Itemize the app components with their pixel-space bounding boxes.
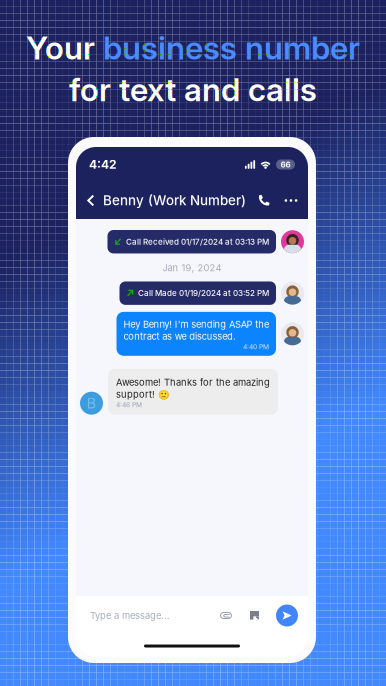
button[interactable]: Send [276,604,298,626]
staticText: 4:42 [89,157,117,172]
staticText: Awesome! Thanks for the amazing [116,377,270,388]
button[interactable]: Call [254,185,274,215]
staticText: 4:40 PM [243,343,269,351]
staticText: for text and calls [69,71,317,109]
staticText: Call Made 01/19/2024 at 03:52 PM [138,288,269,298]
staticText: Benny (Work Number) [103,193,246,208]
button[interactable]: More options [281,185,301,215]
button[interactable]: Templates [248,602,261,628]
staticText: Hey Benny! I'm sending ASAP the [123,319,269,330]
staticText: 66 [280,160,290,169]
staticText: Your [26,29,103,67]
staticText: Type a message... [90,610,170,621]
staticText: contract as we discussed. [123,331,236,342]
staticText: support! 🙂 [116,389,170,400]
staticText: business number [103,29,360,67]
staticText: 4:46 PM [116,401,142,409]
staticText: B [86,394,96,412]
staticText: Call Received 01/17/2024 at 03:13 PM [126,237,269,246]
staticText: Jan 19, 2024 [162,262,221,273]
button[interactable]: Back [83,185,98,215]
button[interactable]: Attach file [217,602,235,628]
